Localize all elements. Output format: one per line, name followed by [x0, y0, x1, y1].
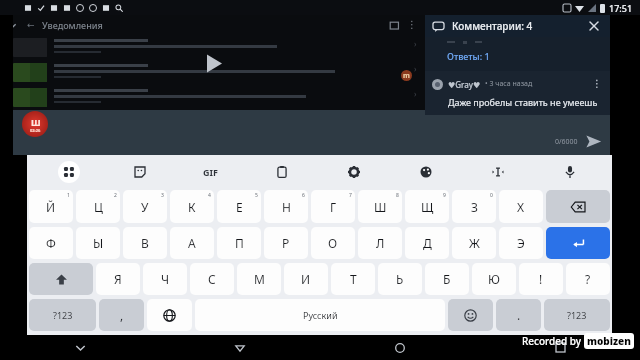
staticText: !	[539, 271, 543, 287]
staticText: ,	[120, 307, 124, 323]
button[interactable]: В	[123, 227, 167, 259]
button[interactable]: Backspace	[546, 190, 610, 223]
staticText: 4	[208, 192, 211, 199]
button[interactable]: Русский	[195, 299, 445, 331]
button[interactable]: С	[190, 263, 234, 295]
button[interactable]: З	[452, 190, 496, 223]
button[interactable]: Close	[586, 18, 602, 34]
staticText: Э	[517, 235, 525, 251]
button[interactable]: Т	[331, 263, 375, 295]
button[interactable]: ?	[566, 263, 610, 295]
button[interactable]: У	[123, 190, 167, 223]
button[interactable]: Б	[425, 263, 469, 295]
button[interactable]: К	[170, 190, 214, 223]
button[interactable]: П	[217, 227, 261, 259]
button[interactable]: М	[237, 263, 281, 295]
button[interactable]: Д	[405, 227, 449, 259]
staticText: П	[235, 235, 244, 251]
button[interactable]: .	[496, 299, 541, 331]
button[interactable]: Stickers	[104, 155, 175, 188]
staticText: Ы	[93, 235, 104, 251]
staticText: М	[254, 271, 265, 287]
button[interactable]: Х	[499, 190, 543, 223]
button[interactable]: ,	[99, 299, 144, 331]
button[interactable]: Clipboard	[246, 155, 318, 188]
button[interactable]: ›	[13, 88, 417, 111]
staticText: ?123	[567, 309, 587, 321]
button[interactable]: Ч	[143, 263, 187, 295]
button[interactable]: Г	[311, 190, 355, 223]
button[interactable]: Shift	[29, 263, 93, 295]
staticText: 2	[114, 192, 117, 199]
button[interactable]: Hide keyboard	[0, 335, 160, 360]
staticText: Recorded by	[522, 334, 584, 348]
button[interactable]: Recent apps	[480, 335, 640, 360]
button[interactable]: Й	[29, 190, 73, 223]
button[interactable]: Change language	[147, 299, 192, 331]
button[interactable]: GIF	[175, 155, 246, 188]
staticText: Ответы: 1	[447, 50, 490, 62]
staticText: mobizen	[587, 334, 631, 348]
staticText: Даже пробелы ставить не умеешь	[448, 96, 598, 108]
button[interactable]: Home	[320, 335, 480, 360]
button[interactable]: Back	[160, 335, 320, 360]
staticText: • 3 часа назад	[485, 79, 533, 89]
staticText: Л	[376, 235, 385, 251]
button[interactable]: ♥Gray♥	[432, 77, 604, 108]
button[interactable]: Ш	[358, 190, 402, 223]
staticText: ⋮	[407, 19, 417, 31]
staticText: Х	[517, 199, 525, 215]
staticText: 17:51	[609, 2, 633, 14]
button[interactable]: Emoji	[448, 299, 493, 331]
staticText: ♥Gray♥	[448, 79, 481, 90]
button[interactable]: Text edit	[462, 155, 534, 188]
button[interactable]: Ь	[378, 263, 422, 295]
staticText: 02:26	[30, 128, 41, 133]
button[interactable]: !	[519, 263, 563, 295]
staticText: Р	[282, 235, 290, 251]
staticText: 5	[255, 192, 258, 199]
button[interactable]: ?123	[29, 299, 96, 331]
button[interactable]: More options	[590, 77, 604, 91]
staticText: Н	[282, 199, 291, 215]
button[interactable]: Ы	[76, 227, 120, 259]
button[interactable]: Щ	[405, 190, 449, 223]
staticText: Ш	[31, 116, 41, 128]
staticText: А	[188, 235, 196, 251]
other: Play	[198, 48, 228, 78]
staticText: Б	[443, 271, 451, 287]
button[interactable]: Voice input	[534, 155, 606, 188]
staticText: Ь	[396, 271, 404, 287]
button[interactable]: Send	[585, 133, 602, 150]
staticText: Ю	[488, 271, 500, 287]
button[interactable]: И	[284, 263, 328, 295]
button[interactable]: А	[170, 227, 214, 259]
button[interactable]: Ответы: 1	[425, 47, 610, 65]
button[interactable]: Themes	[390, 155, 462, 188]
button[interactable]: ?123	[544, 299, 610, 331]
button[interactable]: О	[311, 227, 355, 259]
button[interactable]: Н	[264, 190, 308, 223]
staticText: Е	[236, 199, 243, 215]
staticText: ←	[27, 20, 35, 30]
button[interactable]: Enter	[546, 227, 610, 259]
other: Comments	[433, 21, 444, 32]
button[interactable]: Ц	[76, 190, 120, 223]
button[interactable]: ›	[13, 38, 417, 61]
button[interactable]: Apps	[33, 155, 104, 188]
button[interactable]: ›	[13, 63, 417, 86]
staticText: Щ	[421, 199, 434, 215]
staticText: З	[471, 199, 478, 215]
button[interactable]: Р	[264, 227, 308, 259]
staticText: .	[517, 307, 521, 323]
button[interactable]: Channel avatar	[22, 111, 48, 137]
button[interactable]: Л	[358, 227, 402, 259]
button[interactable]: Э	[499, 227, 543, 259]
button[interactable]: Settings	[318, 155, 390, 188]
button[interactable]: Е	[217, 190, 261, 223]
button[interactable]: Ж	[452, 227, 496, 259]
staticText: Я	[114, 271, 122, 287]
button[interactable]: Ф	[29, 227, 73, 259]
button[interactable]: Я	[96, 263, 140, 295]
button[interactable]: Ю	[472, 263, 516, 295]
